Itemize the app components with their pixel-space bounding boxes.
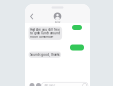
staticText: Alex — [55, 21, 60, 24]
staticText: Hey! Are you still free to grab lunch ar… — [30, 28, 60, 38]
button[interactable]: Message field — [41, 82, 88, 86]
staticText: iMessage — [44, 84, 56, 86]
staticText: Sounds good, thanks — [30, 53, 59, 56]
button[interactable]: Camera — [29, 83, 34, 86]
button[interactable]: Contact info — [49, 12, 65, 24]
button[interactable]: Back — [27, 11, 36, 22]
button[interactable]: Apps — [36, 83, 41, 86]
